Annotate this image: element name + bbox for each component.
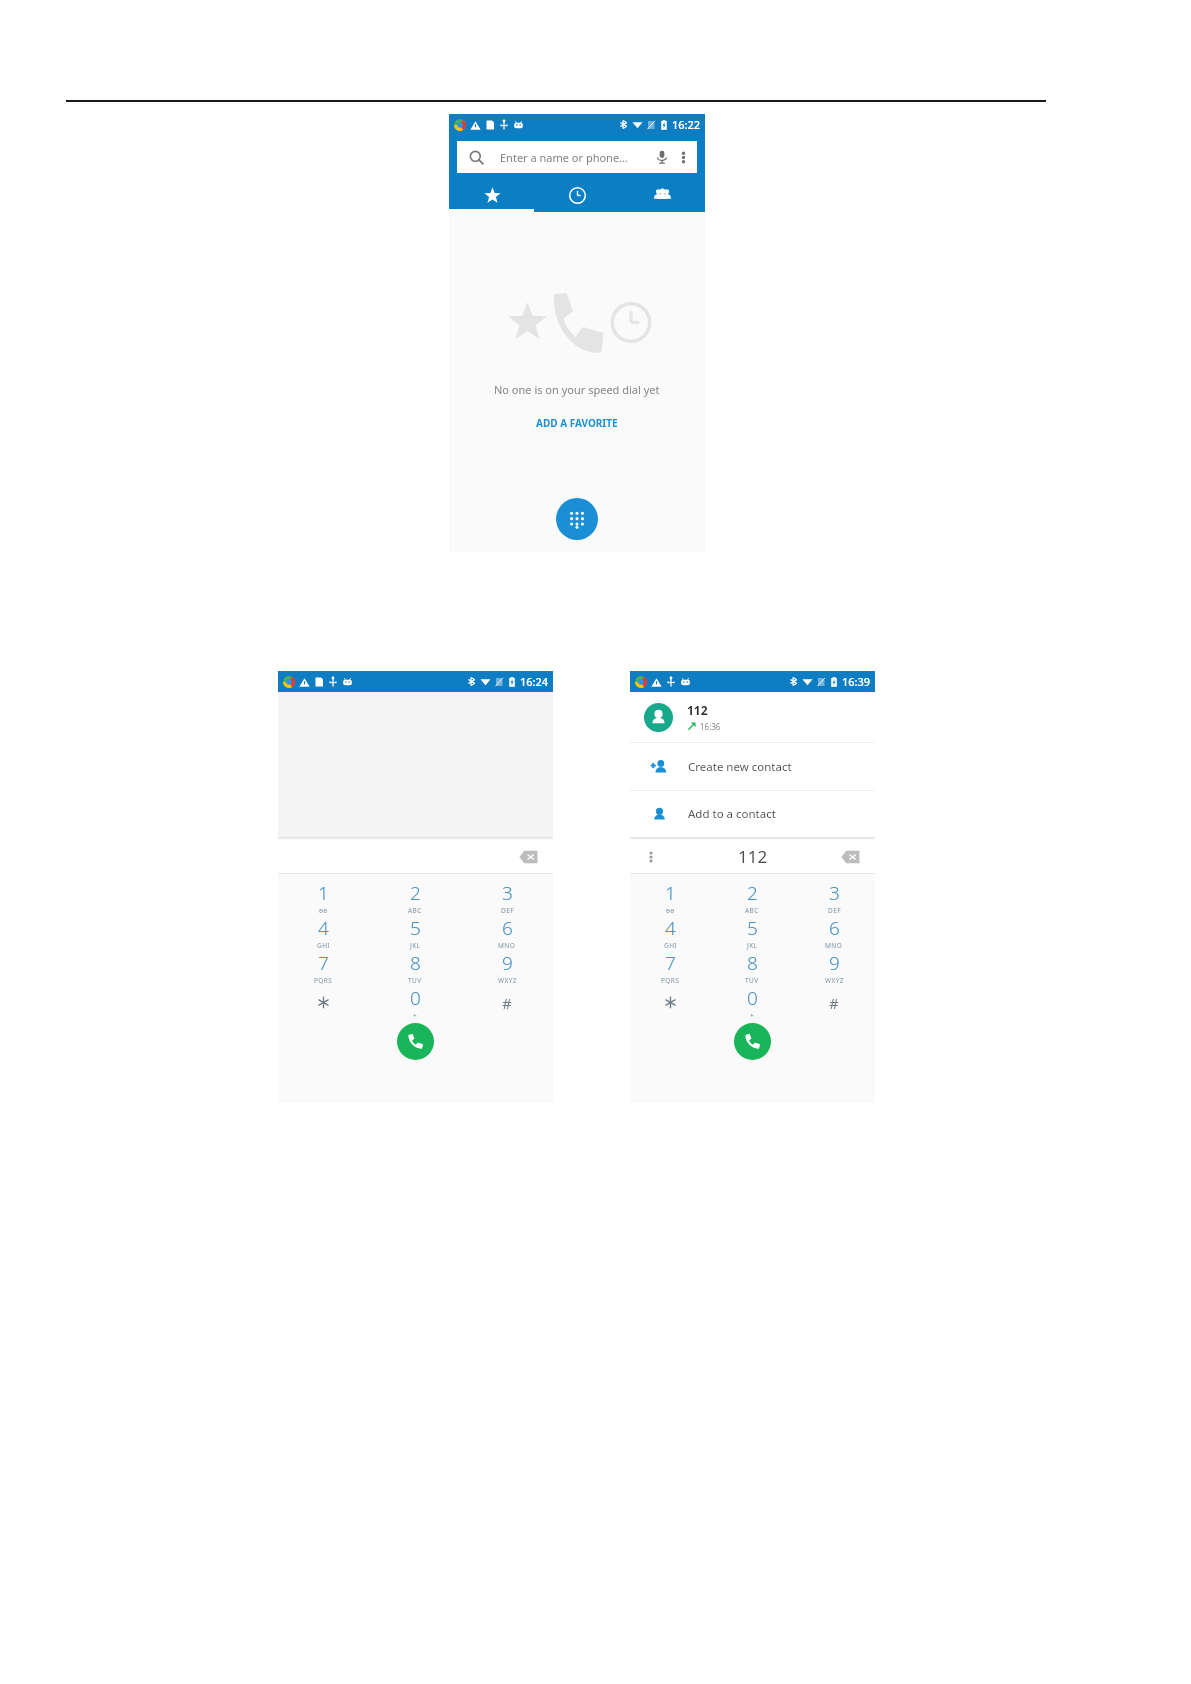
button[interactable]: 9	[793, 950, 875, 985]
staticText: GHI	[317, 941, 330, 950]
staticText: 0	[410, 985, 421, 1011]
button[interactable]: Open dialpad	[556, 498, 598, 540]
staticText: 2	[747, 880, 758, 906]
button[interactable]: 0	[711, 985, 793, 1020]
staticText: PQRS	[314, 976, 333, 985]
button[interactable]: 2	[711, 880, 793, 915]
staticText: JKL	[410, 941, 421, 950]
button[interactable]: Call	[734, 1023, 771, 1060]
staticText: 5	[410, 915, 421, 941]
button[interactable]: 1	[278, 880, 369, 915]
staticText: ADD A FAVORITE	[536, 416, 618, 430]
button[interactable]: 0	[369, 985, 461, 1020]
button[interactable]: More options	[673, 147, 693, 167]
staticText: #	[502, 993, 512, 1013]
staticText: 4	[318, 915, 329, 941]
button[interactable]: 4	[630, 915, 711, 950]
button[interactable]: ADD A FAVORITE	[528, 413, 626, 433]
button[interactable]: Voice search	[651, 146, 673, 168]
staticText: 2	[410, 880, 421, 906]
staticText: GHI	[664, 941, 677, 950]
button[interactable]: 5	[711, 915, 793, 950]
button[interactable]: Tab	[620, 179, 705, 212]
staticText: ɵɵ	[319, 906, 328, 915]
button[interactable]: 6	[793, 915, 875, 950]
button[interactable]: 112	[630, 692, 875, 742]
staticText: 4	[665, 915, 676, 941]
button[interactable]: 9	[461, 950, 553, 985]
button[interactable]: Backspace	[837, 844, 863, 870]
staticText: 112	[687, 702, 708, 718]
staticText: ABC	[745, 906, 759, 915]
staticText: TUV	[408, 976, 422, 985]
staticText: +	[413, 1011, 418, 1020]
button[interactable]: Tab	[535, 179, 620, 212]
button[interactable]: 7	[630, 950, 711, 985]
staticText: 16:22	[672, 117, 701, 132]
button[interactable]: More options	[640, 846, 662, 868]
button[interactable]: Favorites tab	[449, 179, 535, 212]
button[interactable]: 6	[461, 915, 553, 950]
button[interactable]: Enter a name or phone…	[457, 141, 697, 173]
button[interactable]	[278, 985, 369, 1020]
button[interactable]: 2	[369, 880, 461, 915]
staticText: Enter a name or phone…	[500, 150, 628, 165]
staticText: TUV	[745, 976, 759, 985]
staticText: No one is on your speed dial yet	[494, 382, 660, 397]
staticText: ɵɵ	[666, 906, 675, 915]
staticText: 8	[410, 950, 421, 976]
button[interactable]: 3	[793, 880, 875, 915]
staticText: 112	[738, 845, 768, 868]
button[interactable]: 7	[278, 950, 369, 985]
button[interactable]: 8	[711, 950, 793, 985]
button[interactable]: #	[461, 985, 553, 1020]
button[interactable]: 5	[369, 915, 461, 950]
staticText: JKL	[747, 941, 758, 950]
button[interactable]: Create new contact	[630, 743, 875, 790]
staticText: 9	[502, 950, 513, 976]
button[interactable]: #	[793, 985, 875, 1020]
button[interactable]: Call	[397, 1023, 434, 1060]
staticText: 3	[502, 880, 513, 906]
staticText: PQRS	[661, 976, 680, 985]
staticText: +	[750, 1011, 755, 1020]
staticText: 6	[502, 915, 513, 941]
button[interactable]: Add to a contact	[630, 791, 875, 837]
staticText: #	[829, 993, 839, 1013]
staticText: 16:39	[842, 674, 871, 689]
staticText: Create new contact	[688, 759, 792, 775]
staticText: DEF	[501, 906, 514, 915]
button[interactable]: 1	[630, 880, 711, 915]
button[interactable]: 8	[369, 950, 461, 985]
staticText: 1	[318, 880, 329, 906]
staticText: MNO	[825, 941, 843, 950]
button[interactable]: 4	[278, 915, 369, 950]
staticText: 7	[318, 950, 329, 976]
staticText: 7	[665, 950, 676, 976]
staticText: 16:24	[520, 674, 549, 689]
staticText: 3	[829, 880, 840, 906]
staticText: MNO	[498, 941, 516, 950]
staticText: 0	[747, 985, 758, 1011]
staticText: 16:36	[700, 721, 721, 732]
staticText: 8	[747, 950, 758, 976]
staticText: WXYZ	[498, 976, 517, 985]
staticText: 5	[747, 915, 758, 941]
staticText: WXYZ	[825, 976, 844, 985]
staticText: ABC	[408, 906, 422, 915]
button[interactable]	[630, 985, 711, 1020]
staticText: 6	[829, 915, 840, 941]
button[interactable]: Backspace	[515, 844, 541, 870]
staticText: 1	[665, 880, 676, 906]
button[interactable]: 3	[461, 880, 553, 915]
staticText: Add to a contact	[688, 806, 776, 822]
staticText: DEF	[828, 906, 841, 915]
staticText: 9	[829, 950, 840, 976]
